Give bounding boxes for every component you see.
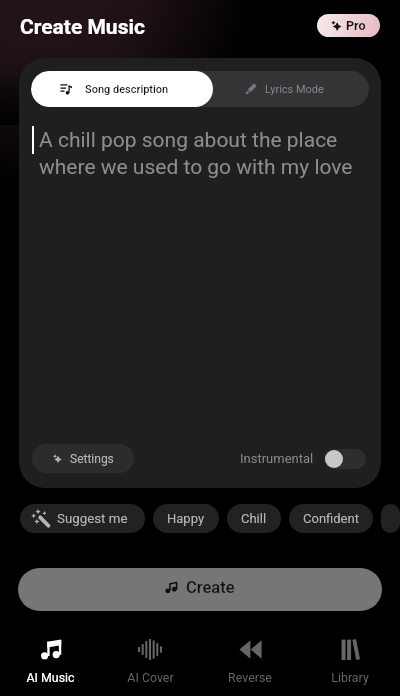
button[interactable]: Create bbox=[18, 568, 382, 611]
staticText: Create bbox=[186, 578, 235, 597]
button[interactable]: Lyrics Mode bbox=[213, 71, 369, 107]
staticText: Reverse bbox=[228, 670, 272, 685]
staticText: Lyrics Mode bbox=[265, 83, 324, 96]
staticText: Library bbox=[331, 670, 369, 685]
button[interactable]: Library bbox=[300, 628, 400, 696]
staticText: A chill pop song about the place where w… bbox=[39, 128, 369, 179]
button[interactable]: Confident bbox=[289, 504, 373, 533]
button[interactable]: AI Music bbox=[0, 628, 100, 696]
button[interactable]: Instrumental toggle bbox=[324, 449, 366, 469]
button[interactable]: Happy bbox=[153, 504, 219, 533]
button[interactable]: Song description bbox=[31, 71, 213, 107]
button[interactable]: Chill bbox=[227, 504, 281, 533]
staticText: Settings bbox=[70, 452, 114, 466]
staticText: Happy bbox=[167, 511, 205, 526]
button[interactable]: AI Cover bbox=[100, 628, 200, 696]
button[interactable]: Settings bbox=[32, 444, 134, 473]
staticText: AI Cover bbox=[127, 670, 174, 685]
staticText: Chill bbox=[241, 511, 267, 526]
staticText: AI Music bbox=[26, 670, 75, 685]
button[interactable]: Reverse bbox=[200, 628, 300, 696]
staticText: Song description bbox=[85, 83, 169, 96]
staticText: Create Music bbox=[20, 15, 145, 40]
staticText: Confident bbox=[303, 511, 359, 526]
button[interactable]: Suggest me bbox=[20, 504, 145, 533]
button[interactable]: Pro bbox=[317, 14, 380, 37]
button[interactable]: Romantic bbox=[381, 504, 400, 533]
staticText: Suggest me bbox=[57, 511, 128, 527]
staticText: Instrumental bbox=[240, 451, 314, 466]
staticText: Pro bbox=[346, 18, 366, 33]
